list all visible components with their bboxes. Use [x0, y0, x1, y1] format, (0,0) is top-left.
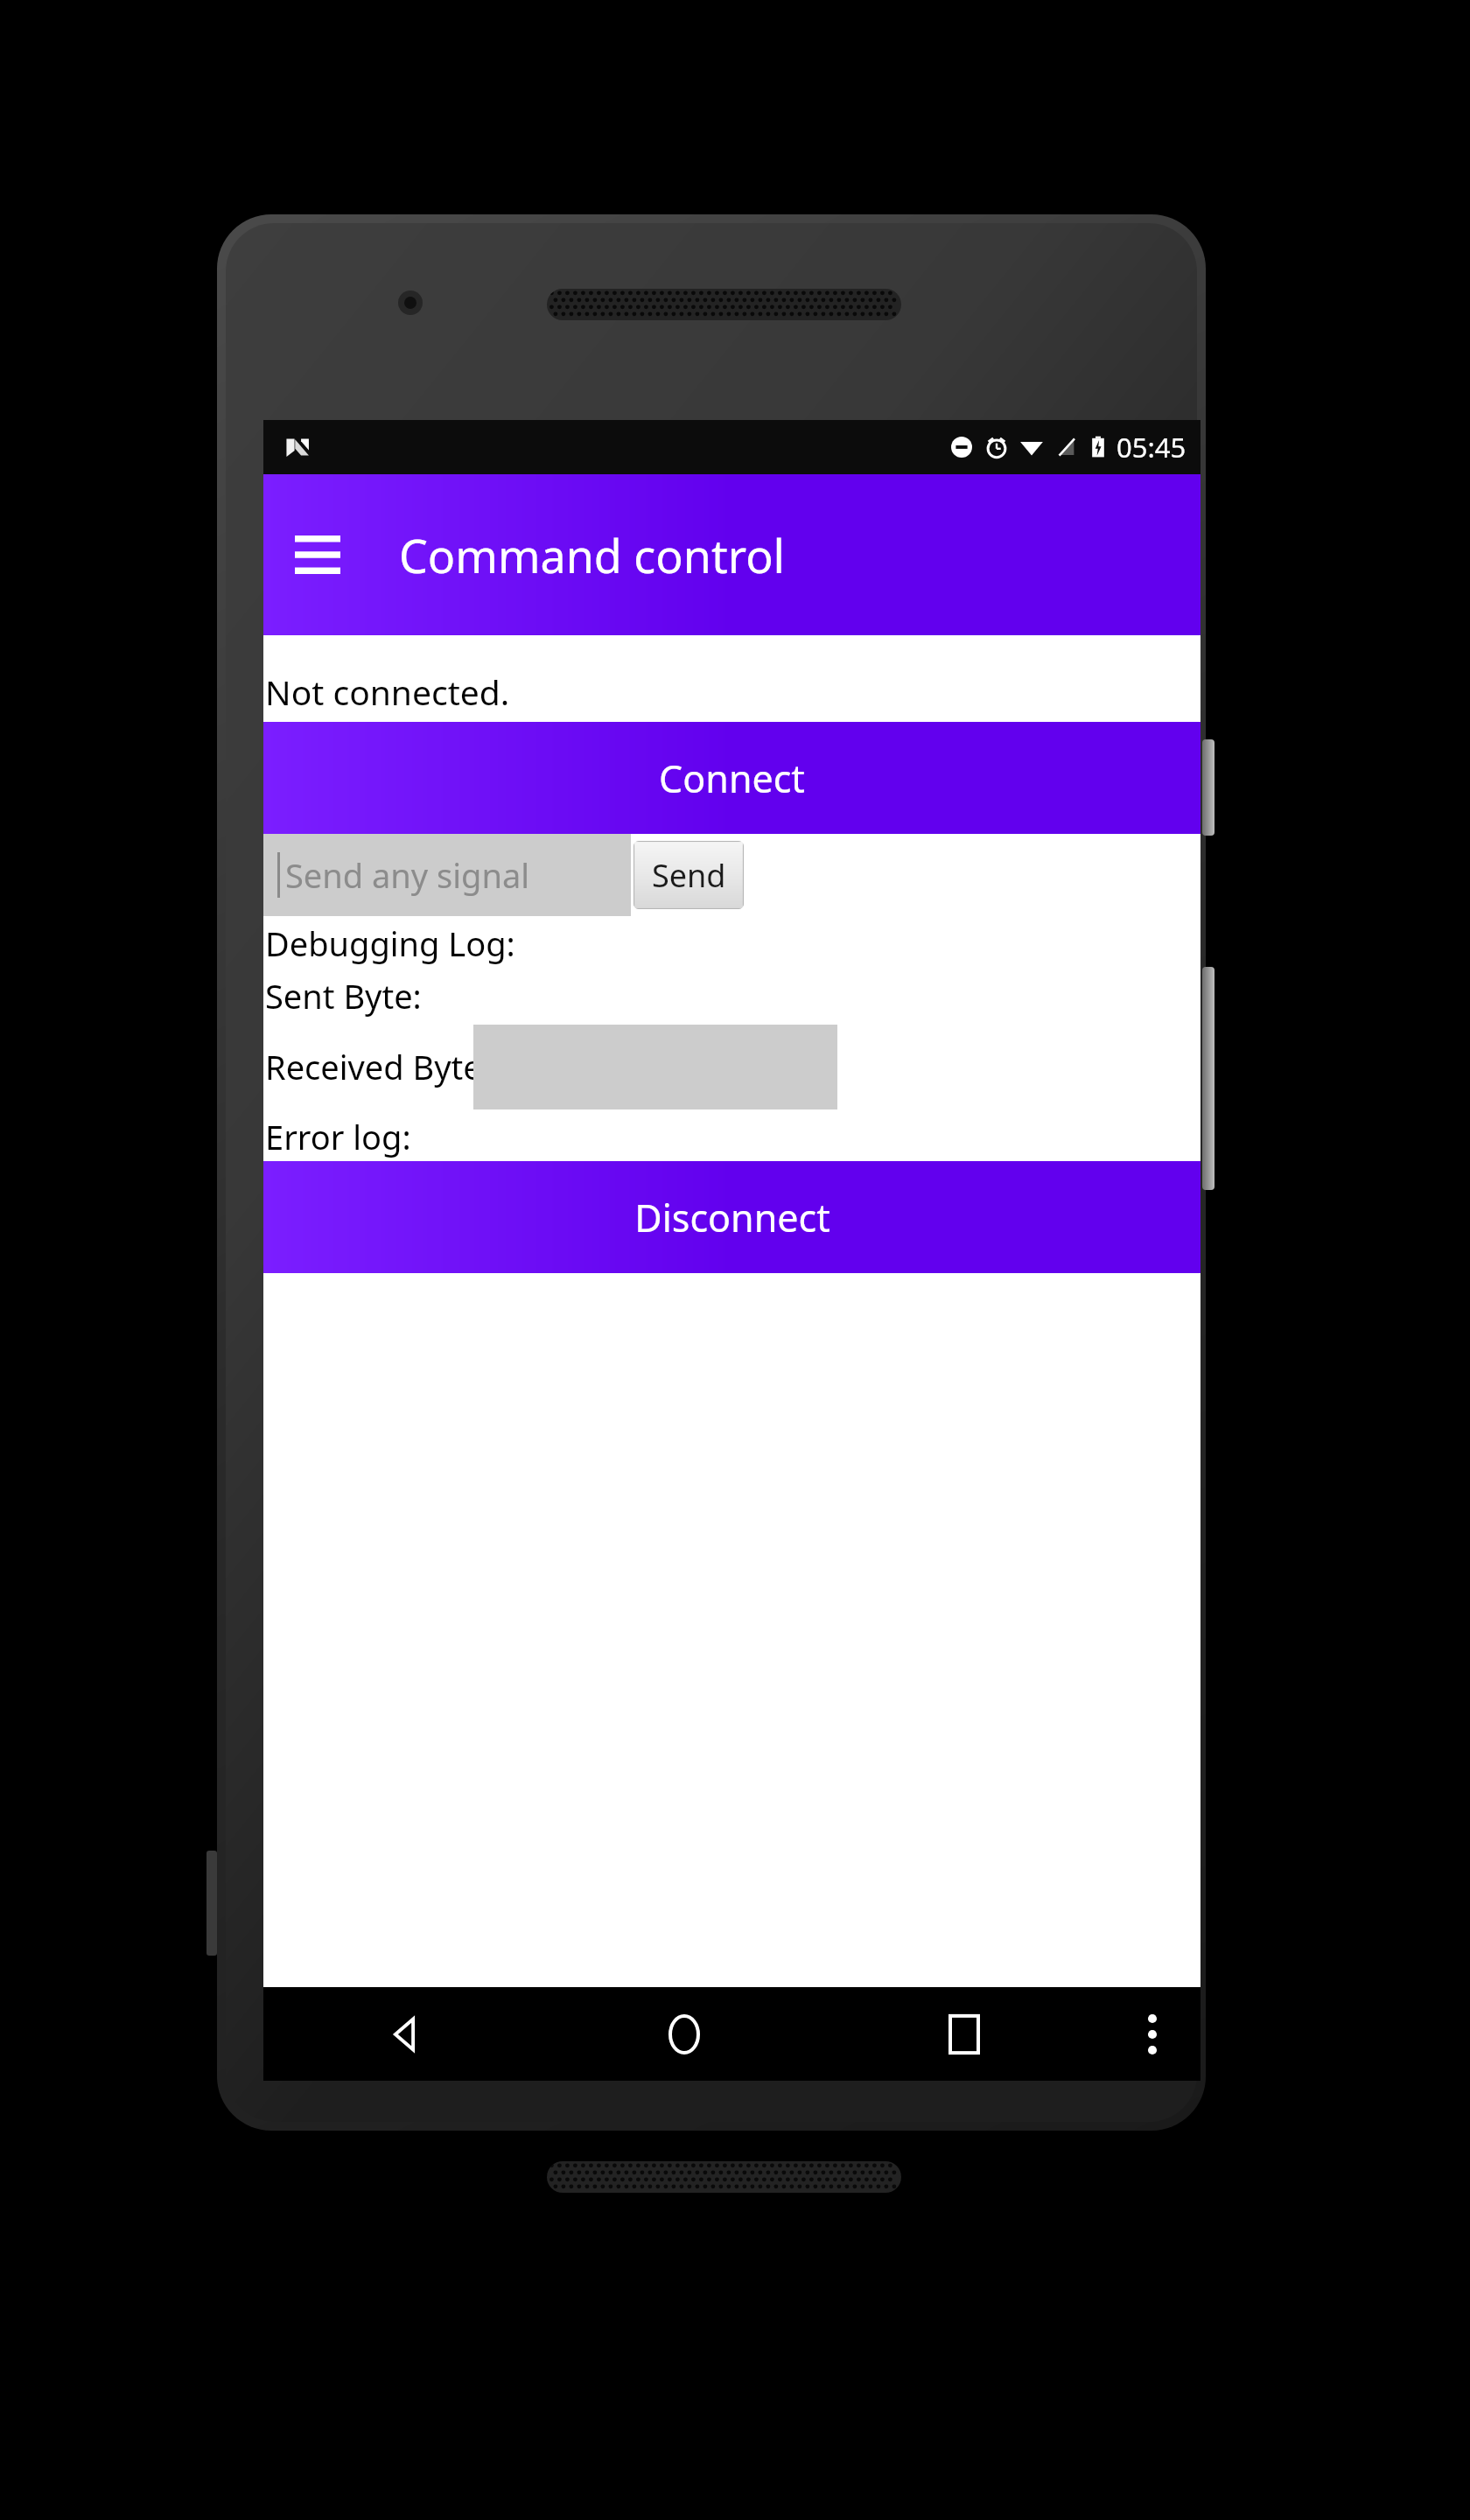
- button[interactable]: Home: [544, 1987, 824, 2081]
- button[interactable]: Disconnect: [263, 1161, 1200, 1273]
- button[interactable]: Open navigation menu: [290, 527, 346, 583]
- staticText: Error log:: [265, 1114, 411, 1159]
- staticText: Send any signal: [285, 852, 530, 898]
- staticText: Send: [652, 854, 726, 897]
- staticText: Debugging Log:: [265, 920, 515, 966]
- staticText: Received Byte:: [265, 1044, 491, 1089]
- staticText: 05:45: [1116, 429, 1186, 465]
- button[interactable]: Send: [633, 841, 744, 909]
- staticText: Connect: [659, 752, 805, 804]
- button[interactable]: [473, 1025, 837, 1109]
- button[interactable]: Connect: [263, 722, 1200, 834]
- button[interactable]: Send any signal: [263, 834, 631, 916]
- staticText: Command control: [399, 524, 786, 586]
- staticText: Disconnect: [634, 1192, 830, 1243]
- staticText: Sent Byte:: [265, 973, 422, 1018]
- staticText: Not connected.: [265, 668, 510, 715]
- button[interactable]: Back: [263, 1987, 544, 2081]
- button[interactable]: Recent apps: [824, 1987, 1104, 2081]
- button[interactable]: More options: [1104, 1987, 1200, 2081]
